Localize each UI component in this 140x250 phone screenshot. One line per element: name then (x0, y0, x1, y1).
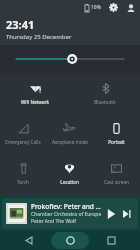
button[interactable]: Back (17, 231, 41, 250)
staticText: Bluetooth (94, 99, 116, 105)
button[interactable]: Emergency Calls Only (0, 113, 46, 153)
staticText: Location (60, 179, 79, 185)
staticText: Wifi Network (21, 99, 49, 105)
staticText: Emergency Calls Only (1, 139, 45, 145)
button[interactable]: Portrait (93, 113, 140, 153)
button[interactable]: Next (119, 206, 134, 221)
button[interactable]: Cast screen (93, 153, 140, 193)
staticText: Chamber Orchestra of Europe (31, 211, 102, 218)
staticText: 10% (91, 4, 101, 11)
staticText: Prokofiev: Peter and t... (31, 202, 102, 211)
staticText: Peter And The Wolf (31, 218, 77, 225)
button[interactable]: Prokofiev: Peter and t... (2, 198, 138, 229)
staticText: Torch (17, 179, 29, 185)
button[interactable]: Settings (108, 2, 119, 13)
staticText: 23:41 (6, 17, 35, 32)
button[interactable]: Play (102, 205, 119, 222)
staticText: Cast screen (104, 179, 129, 185)
staticText: Thursday 25 December (6, 33, 72, 41)
button[interactable]: Bluetooth (70, 73, 140, 113)
button[interactable]: Torch (0, 153, 46, 193)
button[interactable]: Brightness (0, 45, 140, 73)
staticText: Aeroplane mode (52, 139, 88, 145)
staticText: Portrait (108, 139, 125, 145)
button[interactable]: Recent apps (99, 231, 123, 250)
button[interactable]: Aeroplane mode (46, 113, 93, 153)
button[interactable]: Home (51, 232, 89, 249)
button[interactable]: Wifi Network (0, 73, 70, 113)
button[interactable]: Location (46, 153, 93, 193)
button[interactable]: User (125, 2, 136, 13)
